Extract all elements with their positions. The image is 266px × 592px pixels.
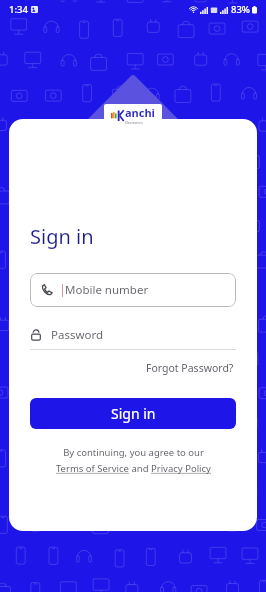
staticText: Sign in <box>30 223 94 250</box>
button[interactable]: Forgot Password? <box>144 359 236 377</box>
staticText: Terms of Service <box>56 462 129 475</box>
staticText: 1:34 <box>9 3 28 16</box>
button[interactable]: Privacy Policy <box>151 462 211 475</box>
staticText: Forgot Password? <box>146 361 234 375</box>
other: Kanchi logo <box>104 104 162 125</box>
staticText: By continuing, you agree to our <box>63 446 204 459</box>
button[interactable]: Sign in <box>30 398 236 429</box>
staticText: anchi <box>125 105 155 120</box>
staticText: Electronics <box>125 120 143 125</box>
staticText: Mobile number <box>65 282 149 298</box>
staticText: 83% <box>231 3 250 16</box>
staticText: Sign in <box>111 404 156 423</box>
button[interactable]: Mobile number <box>30 273 236 307</box>
staticText: Privacy Policy <box>151 462 211 475</box>
button[interactable]: Password <box>30 321 236 350</box>
button[interactable]: Terms of Service <box>56 462 129 475</box>
staticText: Password <box>51 327 104 343</box>
staticText: and <box>129 462 151 475</box>
